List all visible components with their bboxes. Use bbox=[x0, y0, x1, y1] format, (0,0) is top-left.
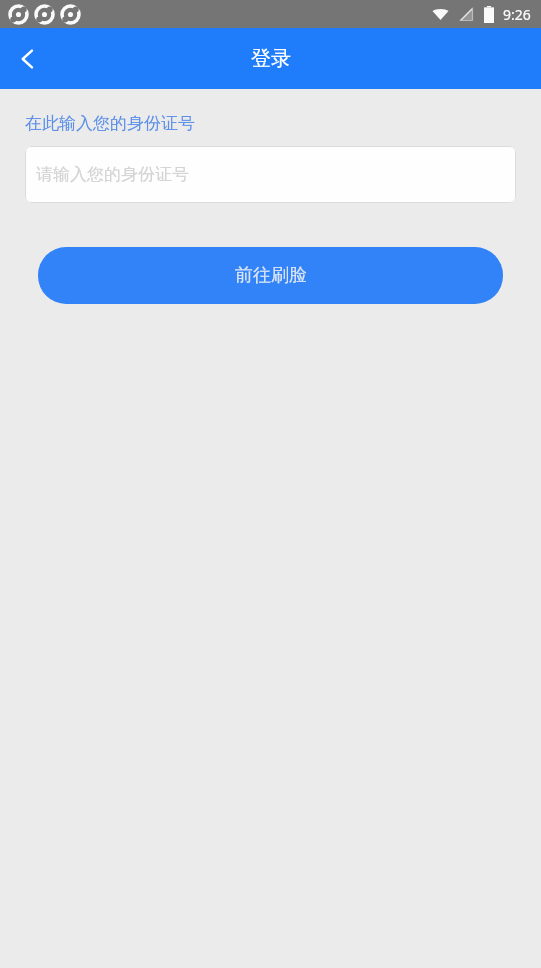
button[interactable]: 前往刷脸 bbox=[38, 247, 503, 304]
staticText: 请输入您的身份证号 bbox=[36, 164, 189, 185]
button[interactable]: Back bbox=[0, 31, 56, 87]
staticText: 9:26 bbox=[503, 5, 531, 24]
staticText: 前往刷脸 bbox=[235, 264, 307, 287]
button[interactable]: 请输入您的身份证号 bbox=[25, 146, 516, 203]
staticText: 在此输入您的身份证号 bbox=[25, 113, 195, 134]
staticText: 登录 bbox=[251, 46, 291, 71]
